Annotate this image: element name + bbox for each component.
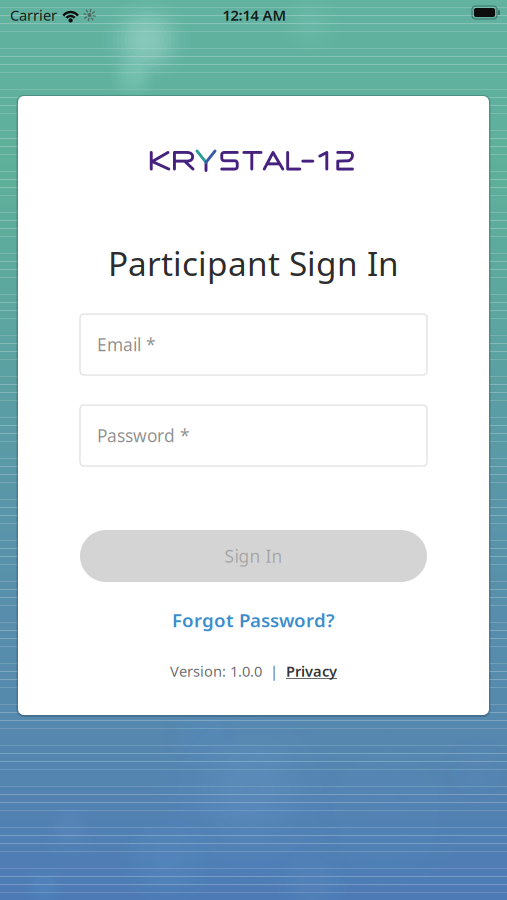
staticText: Sign In [224,544,282,567]
button[interactable]: Email * [80,314,427,375]
button[interactable]: Password * [80,405,427,466]
staticText: Privacy [286,661,337,681]
staticText: Participant Sign In [108,241,399,285]
staticText: Email * [97,333,156,356]
staticText: Version: 1.0.0 [170,661,262,681]
staticText: Forgot Password? [172,608,335,632]
staticText: | [262,661,286,681]
button[interactable]: Forgot Password? [172,608,335,632]
staticText: 12:14 AM [222,5,286,25]
staticText: Carrier [10,5,57,25]
staticText: Password * [97,424,190,447]
button[interactable]: Sign In [80,530,427,582]
button[interactable]: Privacy [286,661,337,681]
